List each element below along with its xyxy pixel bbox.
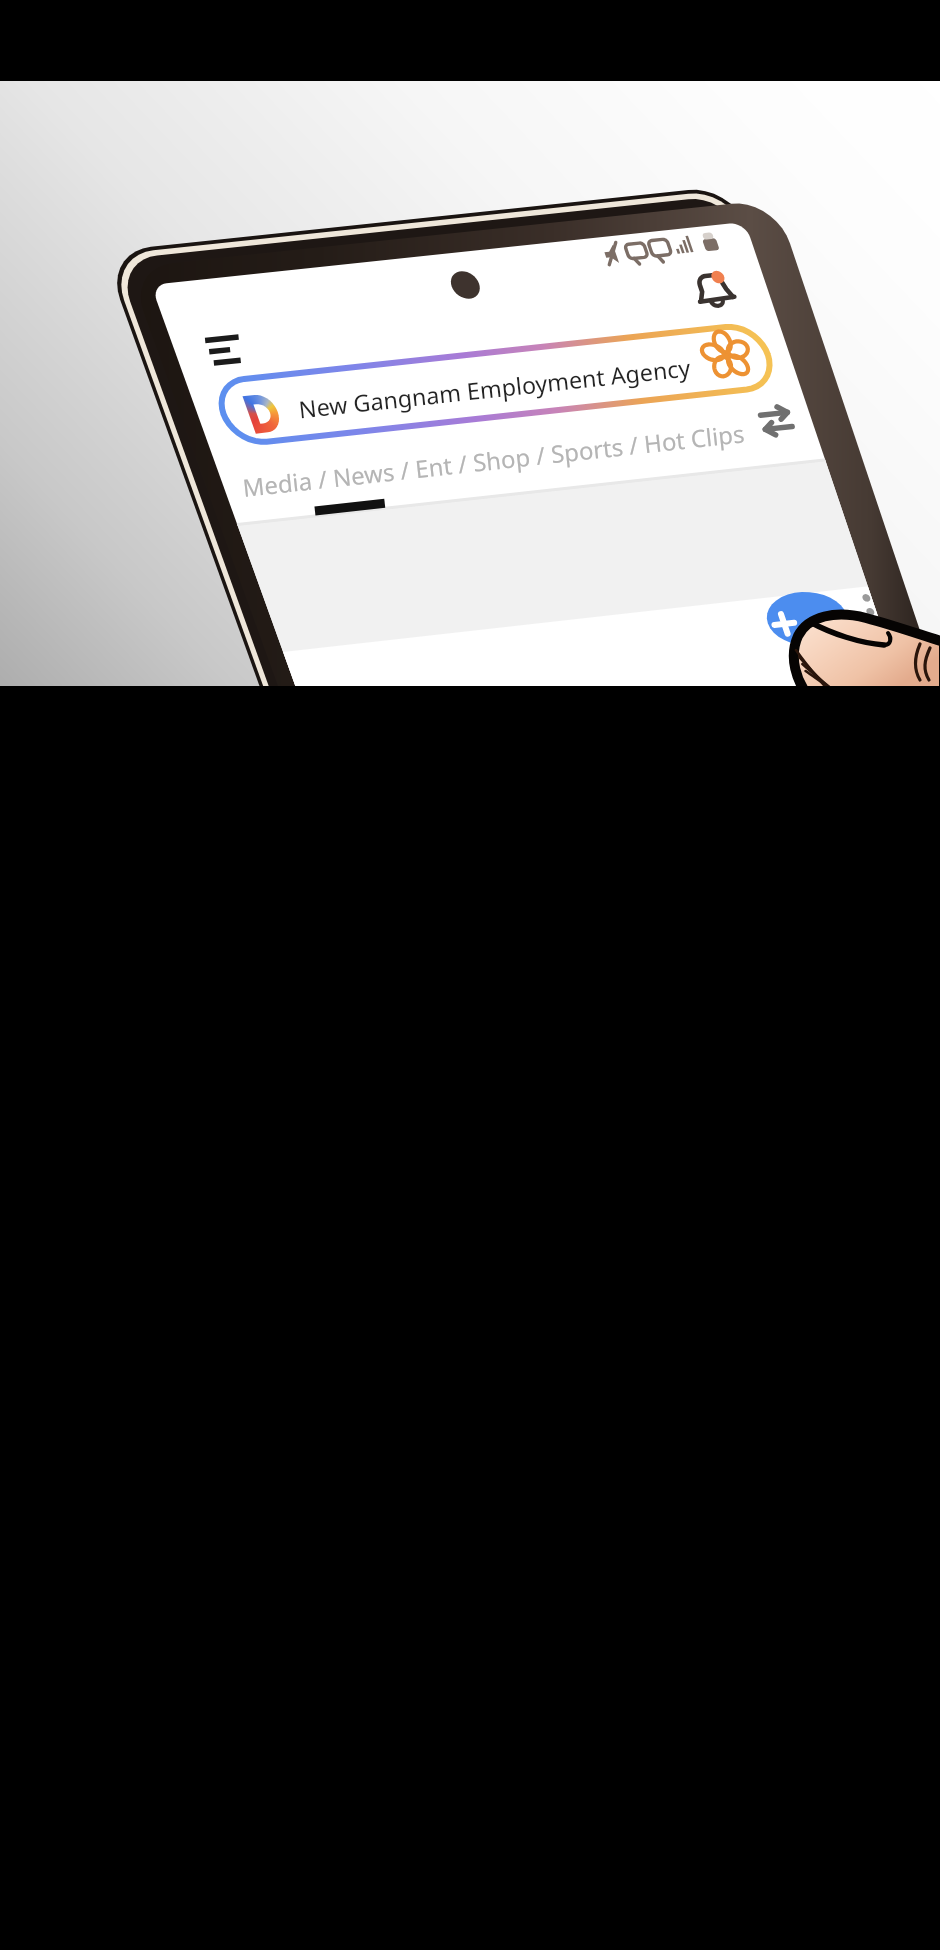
button[interactable]: Finger tapping a phone screen	[0, 0, 940, 1950]
